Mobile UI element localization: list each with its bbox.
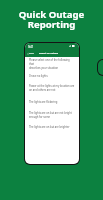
button[interactable]: Back [26, 52, 35, 55]
staticText: The lights are on but are brighter [29, 125, 70, 129]
staticText: Please select one of the following that … [29, 58, 75, 70]
staticText: Report an outage [39, 52, 59, 55]
button[interactable]: Power at the lights at my location are o… [25, 81, 79, 95]
button[interactable]: I have no lights [25, 70, 79, 81]
button[interactable]: The lights are on but are not bright eno… [25, 108, 79, 121]
staticText: The lights are flickering [29, 100, 58, 104]
staticText: The lights are on but are not bright eno… [29, 111, 72, 119]
button[interactable]: The lights are on but are brighter [25, 121, 79, 132]
staticText: I have no lights [29, 74, 48, 78]
staticText: Power at the lights at my location are o… [29, 84, 75, 92]
staticText: 9:41 [28, 45, 34, 49]
staticText: Quick Outage Reporting [0, 8, 103, 30]
button[interactable]: The lights are flickering [25, 95, 79, 108]
staticText: Back [29, 52, 34, 55]
